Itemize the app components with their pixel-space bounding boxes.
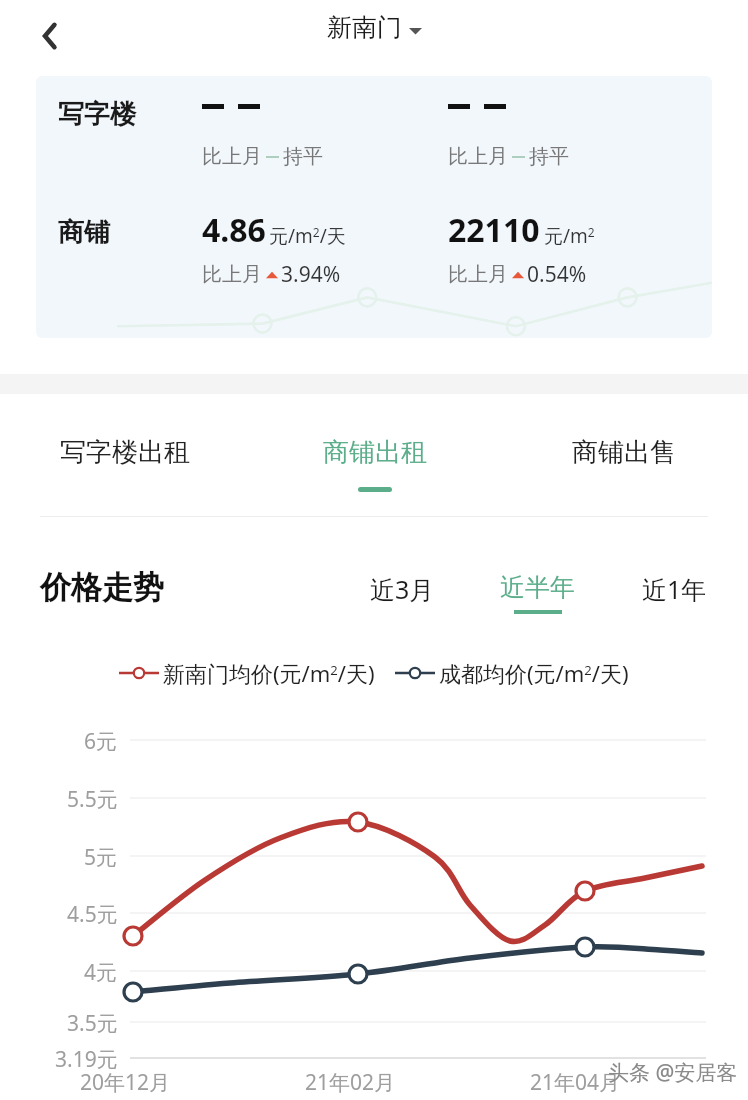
staticText: 6元 <box>84 727 118 756</box>
staticText: 0.54% <box>527 260 587 289</box>
button[interactable]: 近1年 <box>642 572 707 617</box>
staticText: 商铺出售 <box>572 436 676 469</box>
staticText: 比上月 <box>202 144 262 169</box>
button[interactable]: Back <box>22 8 78 64</box>
staticText: 3.5元 <box>67 1009 118 1038</box>
staticText: 写字楼出租 <box>60 436 190 469</box>
staticText: 21年02月 <box>305 1068 396 1097</box>
staticText: 元/m2/天 <box>269 223 346 249</box>
staticText: 持平 <box>529 144 569 169</box>
staticText: 5.5元 <box>67 785 118 814</box>
staticText: 5元 <box>84 843 118 872</box>
staticText: 新南门均价(元/m2/天) <box>163 658 375 688</box>
staticText: 比上月 <box>202 262 262 287</box>
staticText: 4.86 <box>202 208 266 252</box>
button[interactable]: 写字楼出租 <box>0 414 250 514</box>
staticText: 比上月 <box>448 144 508 169</box>
staticText: 商铺出租 <box>323 436 427 469</box>
staticText: 近半年 <box>500 572 575 603</box>
staticText: 写字楼 <box>58 98 136 131</box>
button[interactable]: 新南门 <box>327 12 422 43</box>
button[interactable]: 新南门均价(元/m2/天) <box>119 658 375 688</box>
button[interactable]: 近半年 <box>500 572 575 614</box>
staticText: 20年12月 <box>80 1068 171 1097</box>
staticText: 头条 @安居客 <box>608 1058 738 1087</box>
staticText: 21年04月 <box>530 1068 621 1097</box>
staticText: 3.94% <box>281 260 341 289</box>
staticText: 22110 <box>448 208 540 252</box>
button[interactable]: 商铺出租 <box>250 414 499 514</box>
staticText: 近3月 <box>370 572 435 606</box>
staticText: 持平 <box>283 144 323 169</box>
button[interactable]: 成都均价(元/m2/天) <box>395 658 629 688</box>
staticText: 价格走势 <box>40 568 164 607</box>
staticText: 新南门 <box>327 12 402 43</box>
button[interactable]: 商铺出售 <box>499 414 748 514</box>
staticText: 比上月 <box>448 262 508 287</box>
staticText: 3.19元 <box>55 1045 118 1074</box>
staticText: 成都均价(元/m2/天) <box>439 658 629 688</box>
staticText: 4元 <box>84 958 118 987</box>
staticText: 元/m2 <box>544 223 595 249</box>
staticText: 4.5元 <box>67 900 118 929</box>
staticText: 商铺 <box>58 216 110 249</box>
button[interactable]: 近3月 <box>370 572 435 617</box>
staticText: 近1年 <box>642 572 707 606</box>
button[interactable]: 写字楼 <box>36 76 712 338</box>
